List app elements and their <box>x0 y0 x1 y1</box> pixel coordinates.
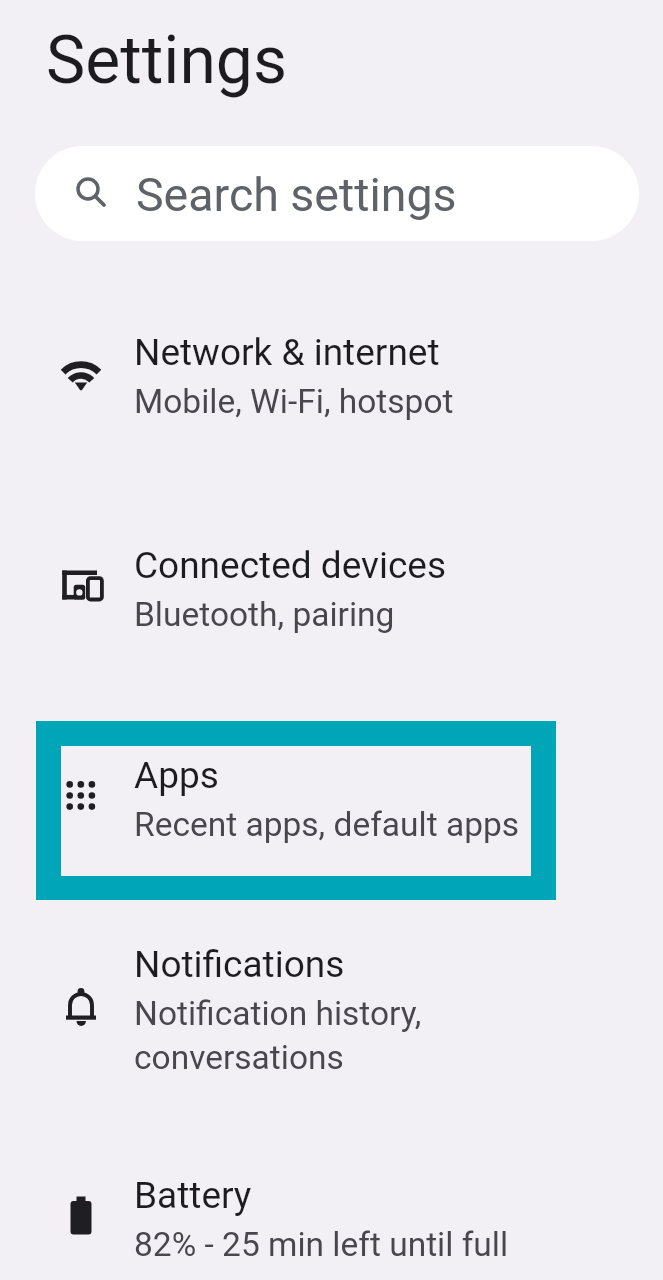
staticText: Bluetooth, pairing <box>134 595 395 634</box>
staticText: Mobile, Wi-Fi, hotspot <box>134 382 454 421</box>
staticText: Search settings <box>136 168 457 222</box>
staticText: 82% - 25 min left until full <box>134 1225 509 1264</box>
button[interactable]: Apps <box>0 709 663 874</box>
button[interactable]: Notifications <box>0 935 663 1085</box>
staticText: Apps <box>134 754 219 797</box>
button[interactable]: Search settings <box>35 146 639 241</box>
staticText: Battery <box>134 1174 252 1217</box>
staticText: Connected devices <box>134 544 447 587</box>
staticText: Notifications <box>134 943 345 986</box>
button[interactable]: Connected devices <box>0 499 663 664</box>
staticText: Network & internet <box>134 331 440 374</box>
staticText: Recent apps, default apps <box>134 805 520 844</box>
staticText: Settings <box>46 22 287 99</box>
staticText: conversations <box>134 1038 344 1077</box>
button[interactable]: Battery <box>0 1129 663 1280</box>
button[interactable]: Network & internet <box>0 286 663 451</box>
staticText: Notification history, <box>134 994 422 1033</box>
